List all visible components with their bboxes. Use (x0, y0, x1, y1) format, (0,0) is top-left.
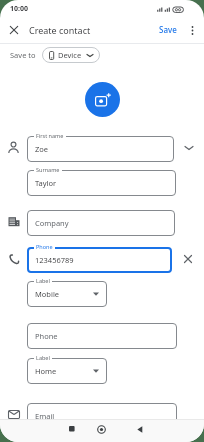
staticText: Label (36, 277, 50, 284)
button[interactable] (8, 24, 19, 35)
button[interactable] (66, 423, 78, 435)
staticText: Phone (36, 243, 53, 250)
staticText: Taylor (35, 178, 57, 188)
staticText: Company (35, 218, 69, 228)
staticText: Create contact (29, 24, 91, 36)
button[interactable]: Zoe (27, 133, 174, 162)
button[interactable] (172, 244, 204, 273)
staticText: Phone (35, 331, 58, 341)
button[interactable]: Mobile (27, 278, 107, 307)
staticText: 10:00 (10, 4, 28, 14)
staticText: Home (35, 366, 57, 376)
button[interactable] (95, 423, 107, 435)
button[interactable]: Home (27, 355, 107, 384)
button[interactable] (85, 82, 120, 117)
staticText: Surname (36, 166, 60, 173)
staticText: Zoe (35, 144, 49, 154)
button[interactable]: Device (42, 47, 100, 63)
button[interactable] (187, 25, 197, 35)
button[interactable]: Taylor (27, 167, 176, 196)
button[interactable]: Phone (27, 320, 177, 349)
button[interactable]: Company (27, 207, 175, 236)
staticText: Save to (10, 50, 36, 60)
staticText: 123456789 (35, 255, 74, 265)
button[interactable] (134, 423, 146, 435)
staticText: First name (36, 132, 64, 139)
staticText: Mobile (35, 289, 60, 299)
staticText: Label (36, 354, 50, 361)
button[interactable]: Save (159, 24, 177, 35)
button[interactable]: 123456789 (27, 244, 172, 273)
staticText: Device (58, 50, 82, 60)
button[interactable] (174, 133, 204, 162)
staticText: Email (35, 411, 55, 421)
button[interactable]: Email (27, 400, 177, 429)
